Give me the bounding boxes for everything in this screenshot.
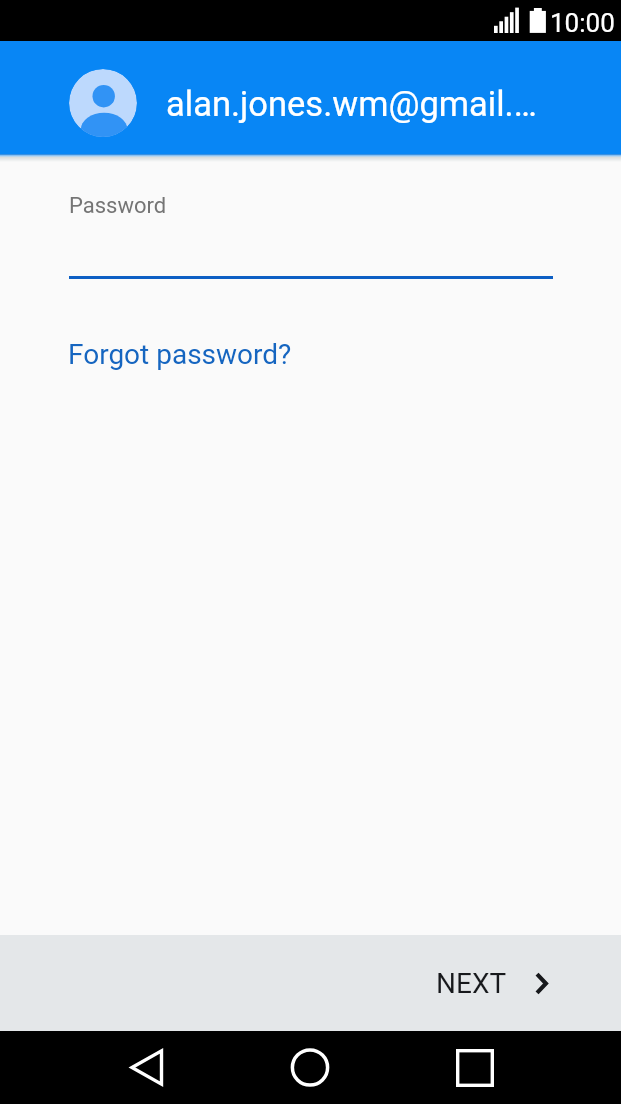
staticText: NEXT bbox=[436, 967, 507, 1000]
button[interactable]: NEXT bbox=[406, 947, 621, 1020]
staticText: alan.jones.wm@gmail.… bbox=[166, 84, 566, 124]
button[interactable]: Password field bbox=[69, 180, 553, 279]
button[interactable]: alan.jones.wm@gmail.… bbox=[0, 41, 621, 154]
button[interactable]: Recent apps bbox=[437, 1031, 513, 1104]
staticText: 10:00 bbox=[550, 8, 615, 38]
button[interactable]: Home bbox=[272, 1031, 348, 1104]
button[interactable]: Forgot password? bbox=[68, 330, 300, 379]
staticText: Password bbox=[69, 193, 167, 219]
staticText: Forgot password? bbox=[68, 338, 292, 371]
button[interactable]: Back bbox=[108, 1031, 184, 1104]
